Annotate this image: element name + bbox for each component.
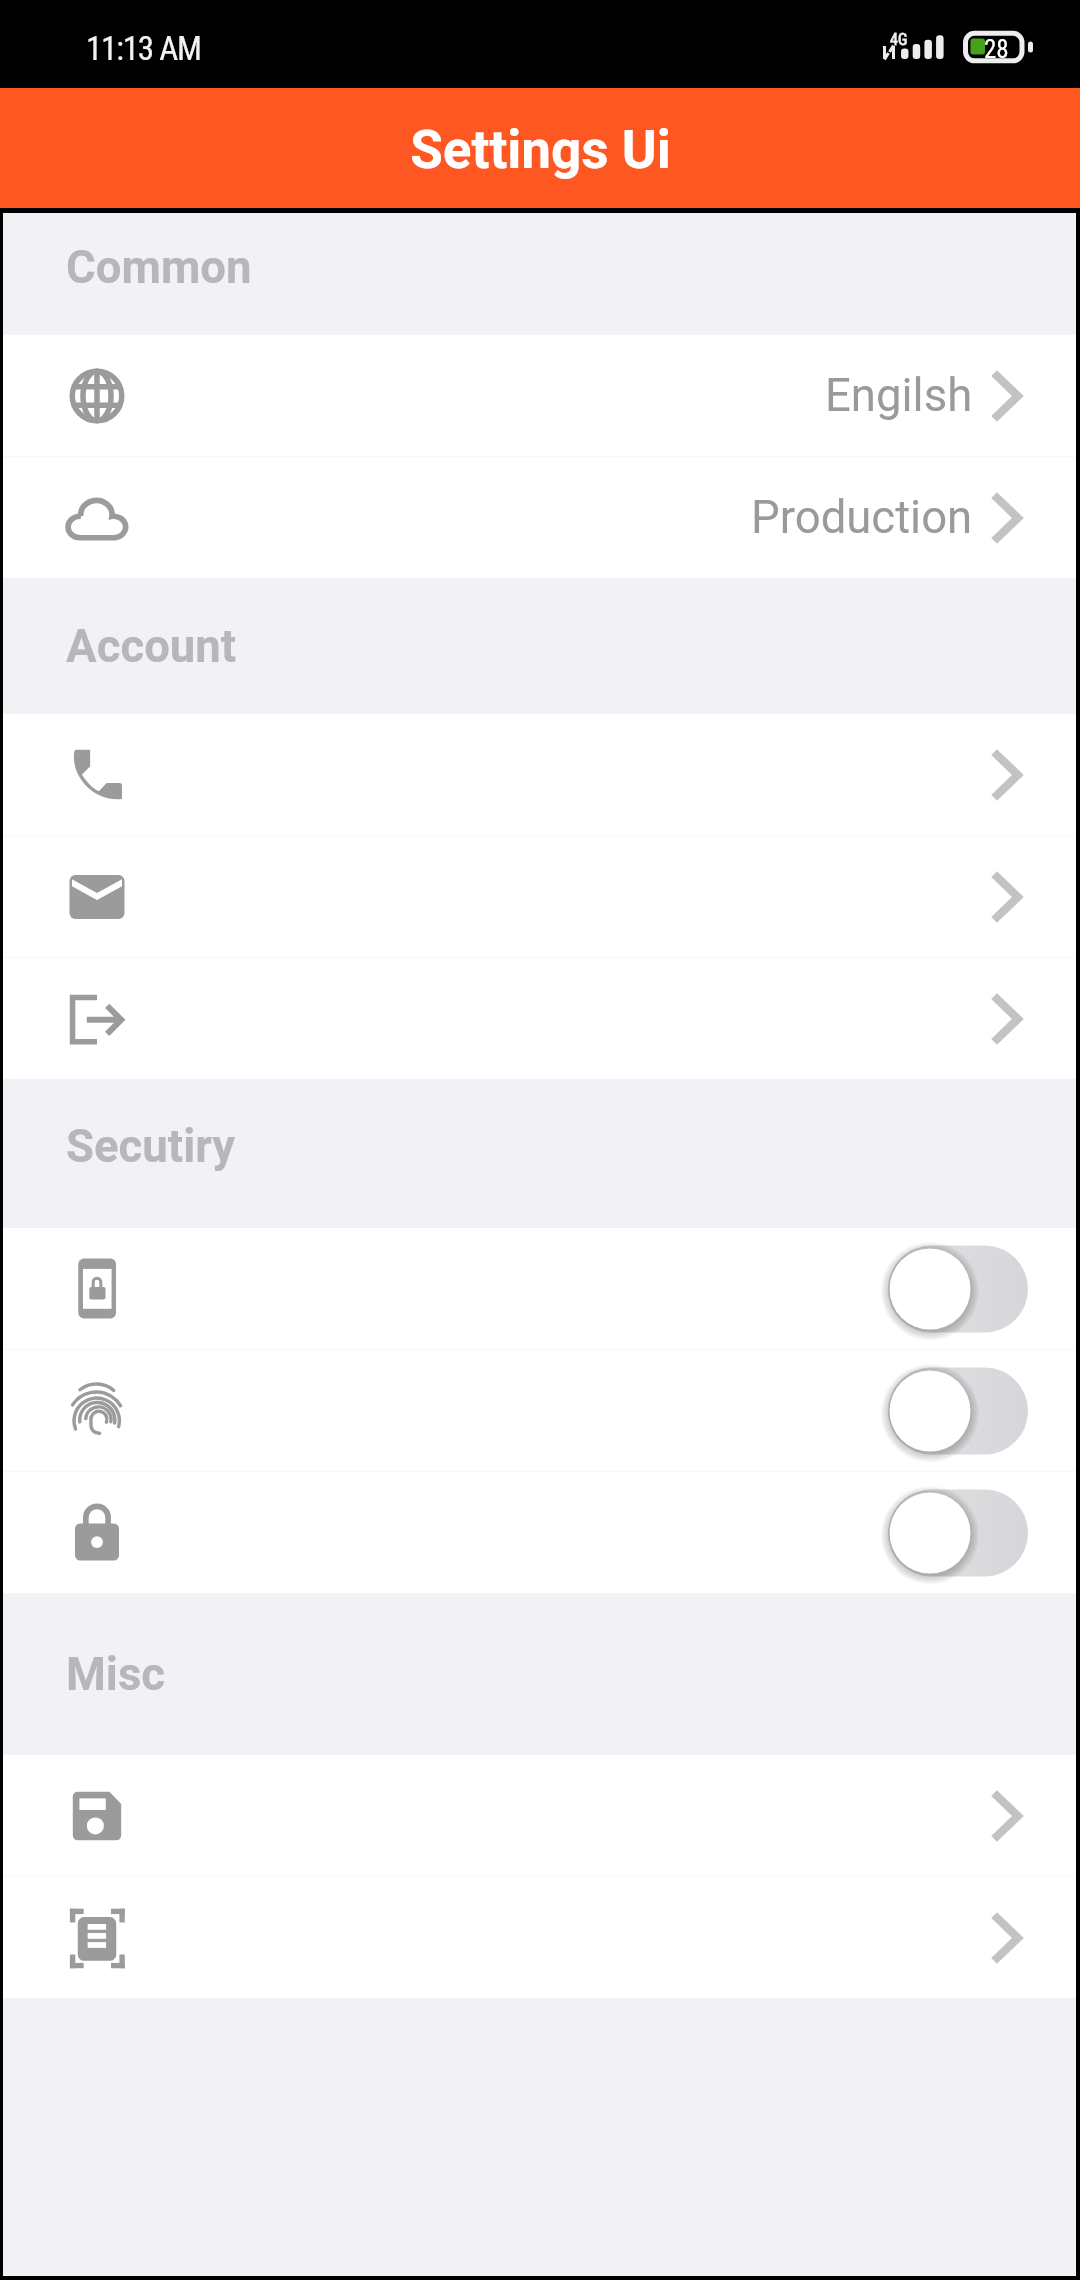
staticText: 11:13 AM xyxy=(86,29,201,68)
button[interactable]: Fingerprint xyxy=(3,1350,1076,1471)
button[interactable]: Screen lock xyxy=(3,1228,1076,1349)
staticText: Account xyxy=(66,620,237,673)
button[interactable]: Save xyxy=(3,1755,1076,1876)
staticText: 4G xyxy=(890,30,908,49)
staticText: Engilsh xyxy=(825,369,973,422)
button[interactable]: Scan document xyxy=(3,1877,1076,1998)
staticText: Misc xyxy=(66,1648,166,1701)
staticText: 28 xyxy=(984,35,1009,64)
button[interactable]: App lock xyxy=(3,1472,1076,1593)
button[interactable]: Engilsh xyxy=(3,335,1076,456)
button[interactable]: Phone xyxy=(3,714,1076,835)
staticText: Settings Ui xyxy=(410,119,671,181)
staticText: Production xyxy=(751,491,973,544)
button[interactable]: Logout xyxy=(3,958,1076,1079)
button[interactable]: Email xyxy=(3,836,1076,957)
staticText: Secutiry xyxy=(66,1120,236,1173)
button[interactable]: Production xyxy=(3,457,1076,578)
staticText: Common xyxy=(66,241,252,294)
